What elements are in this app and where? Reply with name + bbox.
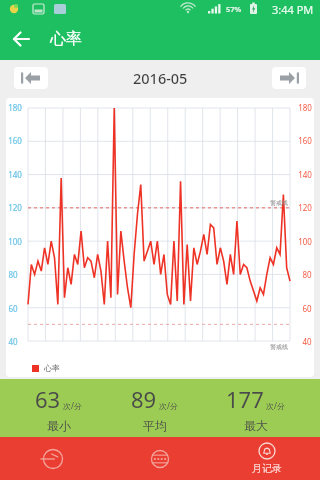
staticText: 次/分 [159,400,178,411]
staticText: 心率 [44,363,60,373]
staticText: 次/分 [266,400,285,411]
button[interactable]: 63 [21,380,96,437]
staticText: 40 [8,336,18,347]
button[interactable]: 89 [117,380,192,437]
button[interactable]: Week record [106,437,213,480]
staticText: 心率 [50,29,82,49]
staticText: 160 [8,135,22,146]
button[interactable]: 月记录 [213,437,320,480]
staticText: 180 [298,102,312,113]
staticText: 57% [226,4,242,14]
staticText: 140 [298,169,312,180]
staticText: 警戒线 [270,199,288,207]
button[interactable]: Back [0,18,42,60]
staticText: 警戒线 [270,343,288,351]
staticText: 89 [131,384,157,414]
staticText: 80 [8,269,18,280]
staticText: 63 [35,384,61,414]
staticText: 40 [302,336,312,347]
staticText: 80 [302,269,312,280]
staticText: 140 [8,169,22,180]
staticText: 60 [302,303,312,314]
button[interactable]: 177 [212,380,299,437]
staticText: 2016-05 [133,68,188,88]
staticText: 120 [8,202,22,213]
staticText: 次/分 [63,400,82,411]
button[interactable]: Next month [272,67,306,89]
staticText: 3:44 PM [272,2,314,17]
staticText: 平均 [143,418,167,433]
staticText: 120 [298,202,312,213]
button[interactable]: Previous month [14,67,48,89]
staticText: 最大 [244,418,268,433]
staticText: 100 [8,236,22,247]
staticText: 月记录 [252,462,282,475]
staticText: 177 [226,384,264,414]
staticText: 最小 [47,418,71,433]
staticText: 100 [298,236,312,247]
staticText: 160 [298,135,312,146]
staticText: 180 [8,102,22,113]
staticText: 60 [8,303,18,314]
button[interactable]: Day record [0,437,106,480]
